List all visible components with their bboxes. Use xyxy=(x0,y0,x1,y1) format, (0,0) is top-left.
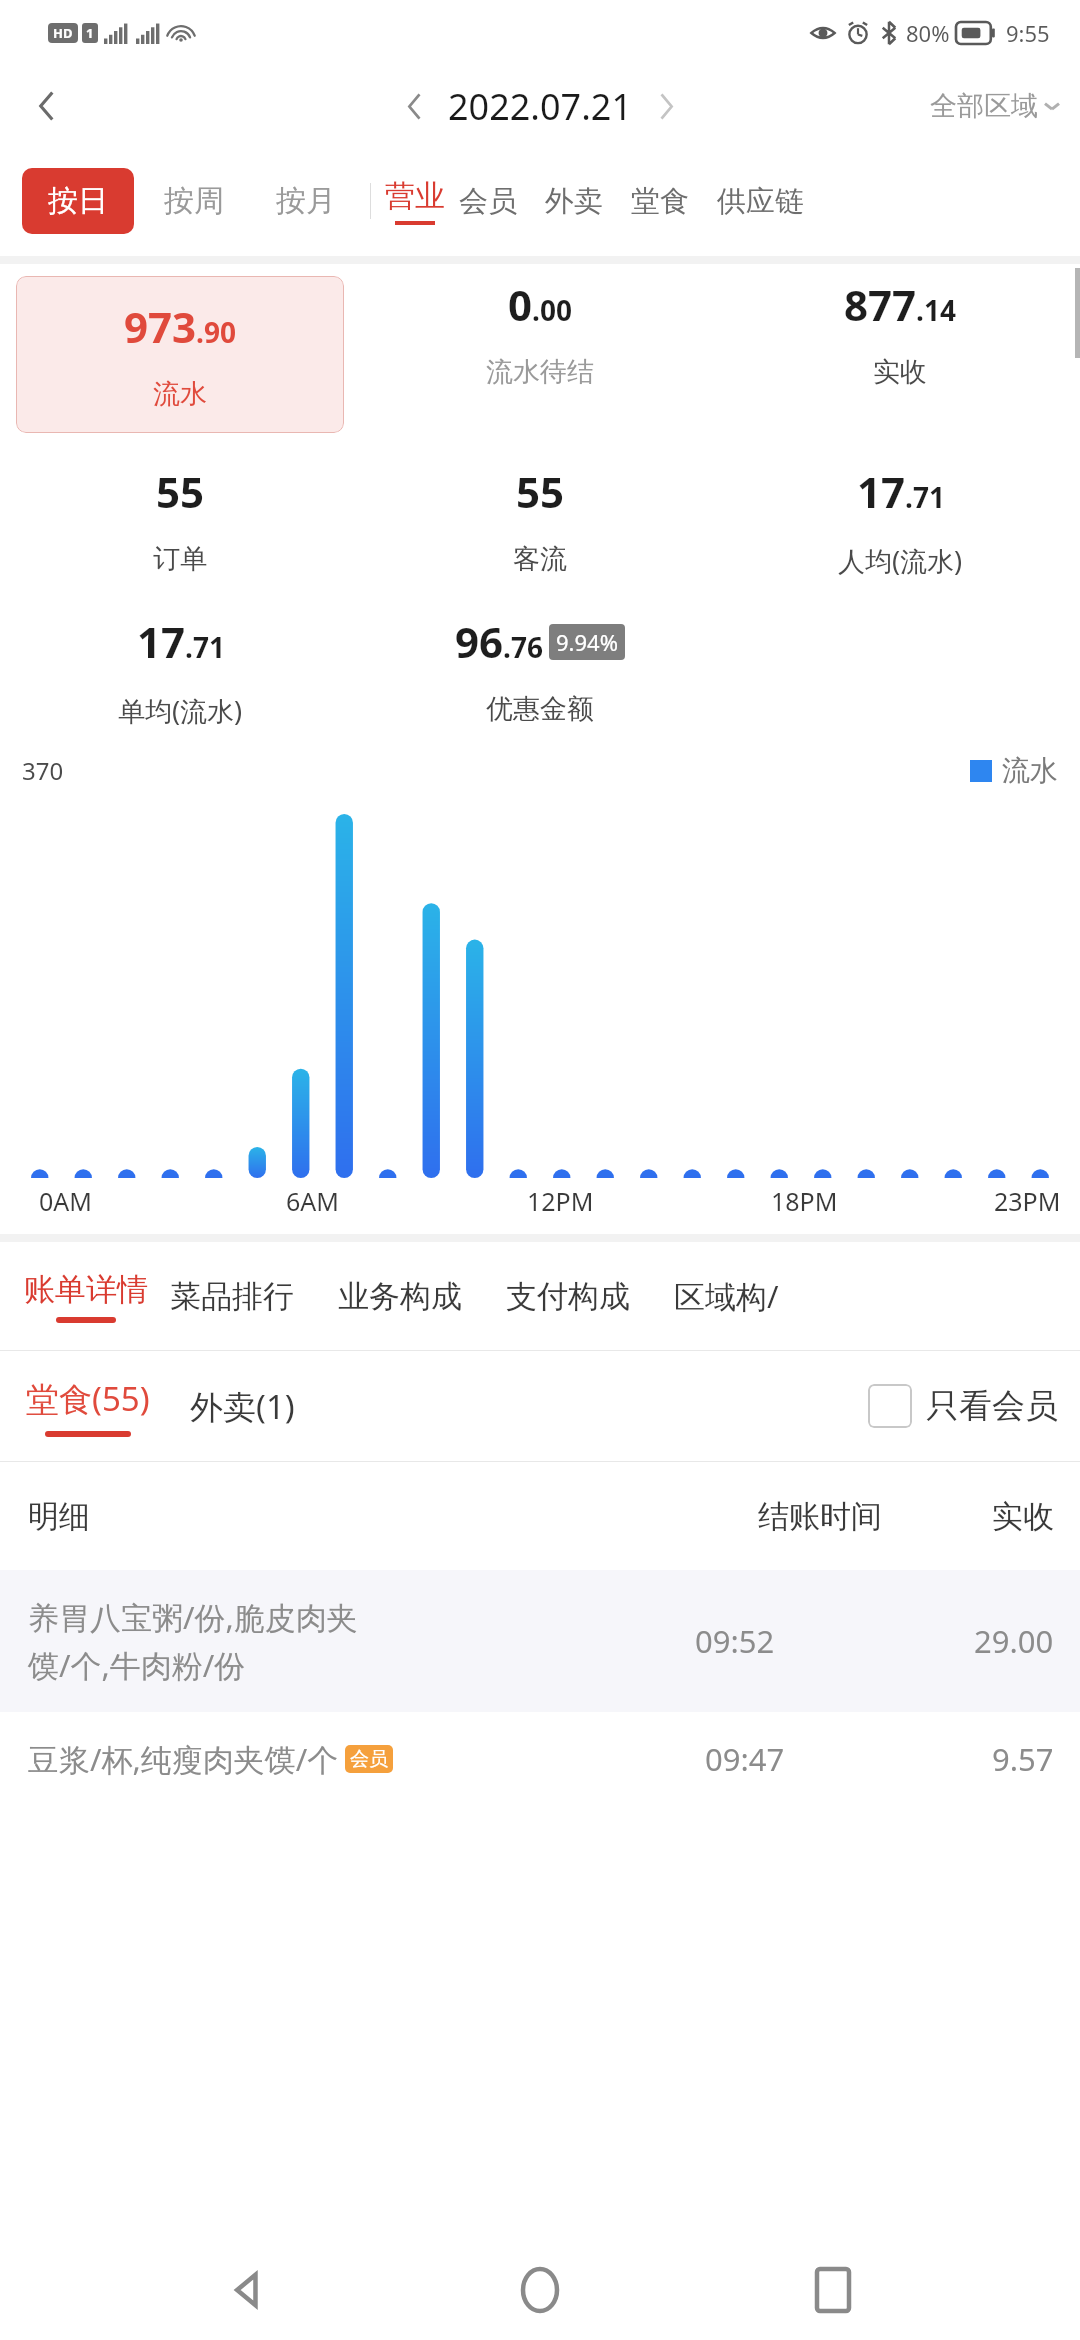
staticText: HD xyxy=(53,24,73,42)
staticText: 17.71 xyxy=(857,463,945,520)
staticText: 流水 xyxy=(1002,753,1058,788)
button[interactable]: 按月 xyxy=(254,166,358,236)
staticText: 单均(流水) xyxy=(118,692,243,729)
staticText: 9:55 xyxy=(1006,18,1050,48)
button[interactable]: 堂食(55) xyxy=(26,1376,150,1437)
staticText: 09:52 xyxy=(695,1620,775,1662)
staticText: 养胃八宝粥/份,脆皮肉夹 馍/个,牛肉粉/份 xyxy=(28,1596,358,1686)
staticText: 55 xyxy=(156,463,205,520)
staticText: 人均(流水) xyxy=(838,542,963,579)
staticText: 菜品排行 xyxy=(170,1277,294,1316)
staticText: 支付构成 xyxy=(506,1277,630,1316)
button[interactable]: Home xyxy=(495,2245,585,2335)
button[interactable]: 只看会员 xyxy=(868,1384,1080,1428)
button[interactable]: 供应链 xyxy=(703,173,818,230)
staticText: 营业 xyxy=(385,177,445,215)
staticText: 23PM xyxy=(994,1184,1061,1218)
staticText: 9.57 xyxy=(992,1738,1054,1780)
button[interactable]: 豆浆/杯,纯瘦肉夹馍/个 xyxy=(0,1712,1080,1806)
staticText: 80% xyxy=(906,18,950,48)
staticText: 全部区域 xyxy=(930,89,1038,123)
staticText: 会员 xyxy=(350,1747,388,1771)
button[interactable]: 外卖 xyxy=(531,173,617,230)
staticText: 1 xyxy=(86,24,94,42)
staticText: 区域构/ xyxy=(674,1275,779,1317)
button[interactable]: Previous day xyxy=(388,80,440,132)
staticText: 明细 xyxy=(28,1497,90,1536)
staticText: 会员 xyxy=(459,183,517,220)
staticText: 客流 xyxy=(513,542,567,576)
staticText: 0AM xyxy=(39,1184,92,1218)
staticText: 96.76 xyxy=(455,613,543,670)
staticText: 供应链 xyxy=(717,183,804,220)
staticText: 877.14 xyxy=(844,276,956,333)
staticText: 6AM xyxy=(286,1184,339,1218)
button[interactable]: 支付构成 xyxy=(484,1265,652,1328)
button[interactable]: Back xyxy=(203,2245,293,2335)
staticText: 17.71 xyxy=(137,613,225,670)
button[interactable]: 业务构成 xyxy=(316,1265,484,1328)
button[interactable]: 0.00 xyxy=(360,276,720,389)
button[interactable]: 账单详情 xyxy=(24,1270,148,1323)
button[interactable]: Back xyxy=(18,78,74,134)
staticText: 18PM xyxy=(771,1184,838,1218)
staticText: 按日 xyxy=(48,182,108,220)
button[interactable]: 877.14 xyxy=(720,276,1080,389)
staticText: 堂食 xyxy=(631,183,689,220)
staticText: 2022.07.21 xyxy=(448,82,633,131)
staticText: 外卖(1) xyxy=(190,1384,295,1429)
staticText: 堂食(55) xyxy=(26,1376,150,1421)
button[interactable]: 全部区域 xyxy=(930,89,1062,123)
staticText: 实收 xyxy=(873,355,927,389)
staticText: 实收 xyxy=(992,1497,1054,1536)
button[interactable]: 17.71 xyxy=(0,613,360,729)
staticText: 只看会员 xyxy=(926,1385,1058,1427)
staticText: 29.00 xyxy=(974,1620,1054,1662)
staticText: 9.94% xyxy=(556,627,618,657)
button[interactable]: 会员 xyxy=(445,173,531,230)
staticText: 973.90 xyxy=(124,298,236,355)
button[interactable]: 区域构/ xyxy=(652,1263,801,1329)
staticText: 0.00 xyxy=(508,276,572,333)
button[interactable]: 96.76 xyxy=(360,613,720,726)
staticText: 优惠金额 xyxy=(486,692,594,726)
staticText: 账单详情 xyxy=(24,1270,148,1309)
button[interactable]: 55 xyxy=(0,463,360,576)
staticText: 业务构成 xyxy=(338,1277,462,1316)
button[interactable]: 营业 xyxy=(385,177,445,225)
staticText: 370 xyxy=(22,754,64,787)
staticText: 55 xyxy=(516,463,565,520)
staticText: 流水 xyxy=(153,377,207,411)
staticText: 外卖 xyxy=(545,183,603,220)
staticText: 按月 xyxy=(276,182,336,220)
staticText: 12PM xyxy=(527,1184,594,1218)
staticText: 按周 xyxy=(164,182,224,220)
button[interactable]: Next day xyxy=(641,80,693,132)
staticText: 豆浆/杯,纯瘦肉夹馍/个 xyxy=(28,1738,339,1780)
button[interactable]: 菜品排行 xyxy=(148,1265,316,1328)
staticText: 结账时间 xyxy=(758,1497,882,1536)
button[interactable]: 按日 xyxy=(22,168,134,234)
button[interactable]: 按周 xyxy=(134,166,254,236)
staticText: 订单 xyxy=(153,542,207,576)
staticText: 流水待结 xyxy=(486,355,594,389)
staticText: 09:47 xyxy=(705,1738,785,1780)
button[interactable]: Recents xyxy=(788,2245,878,2335)
button[interactable]: 973.90 xyxy=(16,276,344,433)
button[interactable]: 外卖(1) xyxy=(182,1376,303,1437)
button[interactable]: 17.71 xyxy=(720,463,1080,579)
button[interactable]: 55 xyxy=(360,463,720,576)
button[interactable]: 堂食 xyxy=(617,173,703,230)
button[interactable]: 养胃八宝粥/份,脆皮肉夹 馍/个,牛肉粉/份 xyxy=(0,1570,1080,1712)
